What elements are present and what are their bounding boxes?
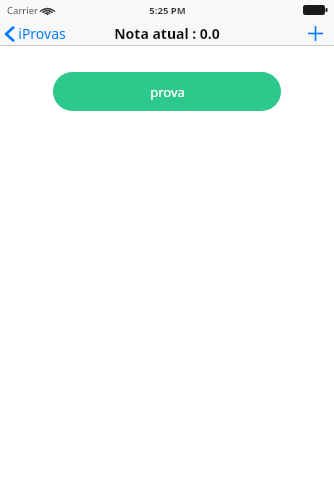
staticText: iProvas: [18, 24, 66, 43]
staticText: Nota atual : 0.0: [114, 24, 220, 43]
button[interactable]: prova: [53, 72, 281, 111]
button[interactable]: iProvas: [0, 22, 74, 45]
staticText: prova: [150, 83, 185, 101]
button[interactable]: Add: [297, 22, 334, 45]
staticText: 5:25 PM: [149, 4, 186, 17]
staticText: Carrier: [7, 4, 38, 17]
